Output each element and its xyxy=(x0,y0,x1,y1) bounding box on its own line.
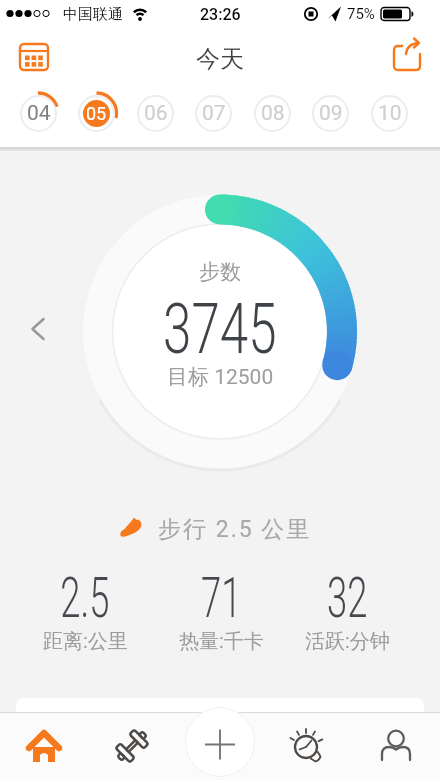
button[interactable] xyxy=(0,713,88,780)
staticText: 75% xyxy=(347,5,375,23)
staticText: 05 xyxy=(86,103,107,124)
staticText: 07 xyxy=(202,101,226,126)
button[interactable] xyxy=(264,713,352,780)
button[interactable]: 10 xyxy=(371,95,408,132)
button[interactable]: 05 xyxy=(78,95,115,132)
button[interactable]: 07 xyxy=(195,95,232,132)
staticText: 2.5 xyxy=(60,565,110,631)
button[interactable] xyxy=(88,713,176,780)
staticText: 中国联通 xyxy=(63,5,123,24)
button[interactable]: 08 xyxy=(254,95,291,132)
button[interactable] xyxy=(25,315,51,343)
button[interactable] xyxy=(185,707,255,777)
staticText: 23:26 xyxy=(200,5,241,24)
button[interactable]: 06 xyxy=(137,95,174,132)
staticText: 步行 2.5 公里 xyxy=(158,515,312,544)
staticText: 步数 xyxy=(199,259,241,285)
button[interactable]: 09 xyxy=(312,95,349,132)
button[interactable] xyxy=(385,38,429,78)
button[interactable]: 04 xyxy=(20,95,57,132)
staticText: 32 xyxy=(327,565,368,631)
staticText: 目标 12500 xyxy=(167,364,274,390)
staticText: 活跃:分钟 xyxy=(305,629,390,654)
staticText: 06 xyxy=(144,101,168,126)
staticText: 10 xyxy=(378,101,402,126)
staticText: 08 xyxy=(261,101,285,126)
staticText: 今天 xyxy=(196,44,244,74)
staticText: 09 xyxy=(319,101,343,126)
staticText: 04 xyxy=(27,101,51,126)
staticText: 热量:千卡 xyxy=(179,629,264,654)
staticText: 71 xyxy=(201,565,242,631)
button[interactable] xyxy=(352,713,440,780)
staticText: 距离:公里 xyxy=(43,629,128,654)
button[interactable] xyxy=(12,38,56,78)
staticText: 3745 xyxy=(163,287,277,370)
